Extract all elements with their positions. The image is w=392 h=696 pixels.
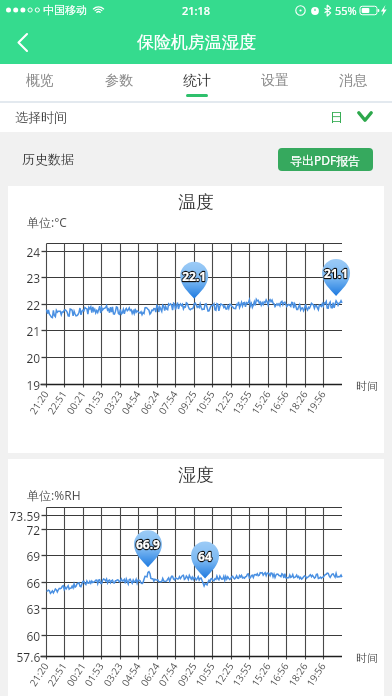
- staticText: 保险机房温湿度: [137, 32, 256, 53]
- staticText: 湿度: [178, 464, 214, 487]
- staticText: 选择时间: [15, 109, 67, 125]
- staticText: 单位:°C: [27, 214, 67, 230]
- staticText: 设置: [261, 72, 289, 90]
- button[interactable]: 参数: [79, 64, 158, 101]
- staticText: 中国移动: [43, 3, 87, 17]
- staticText: 21:18: [182, 3, 211, 18]
- button[interactable]: 导出PDF报告: [278, 148, 373, 171]
- button[interactable]: Back: [0, 20, 44, 64]
- staticText: 导出PDF报告: [290, 152, 361, 168]
- button[interactable]: 概览: [0, 64, 79, 101]
- staticText: 55%: [335, 3, 357, 18]
- button[interactable]: 统计: [158, 64, 236, 101]
- staticText: 日: [330, 109, 343, 125]
- staticText: 概览: [26, 72, 54, 90]
- staticText: 单位:%RH: [27, 487, 81, 503]
- staticText: 消息: [339, 72, 367, 90]
- staticText: 历史数据: [22, 151, 74, 167]
- button[interactable]: 消息: [314, 64, 392, 101]
- staticText: 参数: [105, 72, 133, 90]
- staticText: 温度: [178, 191, 214, 214]
- staticText: 统计: [183, 72, 211, 90]
- button[interactable]: 选择时间: [0, 103, 392, 132]
- button[interactable]: 设置: [236, 64, 314, 101]
